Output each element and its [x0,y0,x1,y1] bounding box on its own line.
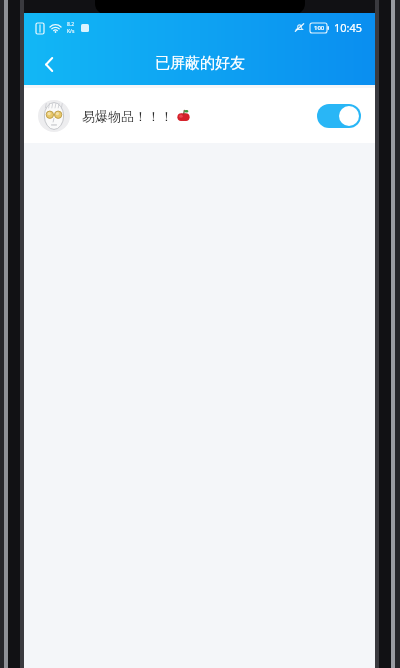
staticText: 100 [314,24,325,32]
button[interactable]: Blocked toggle [317,104,361,128]
staticText: K/s [67,28,75,35]
button[interactable]: Back [30,45,68,83]
button[interactable]: 易爆物品！！！ [24,88,375,143]
staticText: 易爆物品！！！ [82,108,173,124]
staticText: 8.2 [67,21,75,28]
staticText: 10:45 [334,20,363,35]
staticText: 已屏蔽的好友 [155,54,245,73]
